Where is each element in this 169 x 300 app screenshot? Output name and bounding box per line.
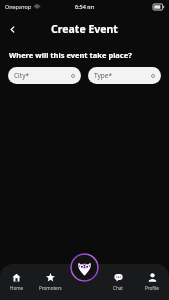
staticText: Home bbox=[10, 285, 24, 291]
button[interactable]: Chat bbox=[101, 264, 135, 300]
staticText: Type* bbox=[94, 71, 113, 80]
button[interactable]: Home bbox=[0, 264, 33, 300]
button[interactable]: Back bbox=[4, 21, 20, 37]
staticText: Promoters bbox=[39, 285, 62, 291]
button[interactable]: Create bbox=[70, 253, 99, 282]
staticText: Create Event bbox=[51, 22, 118, 36]
button[interactable]: City* bbox=[8, 67, 81, 84]
button[interactable]: Profile bbox=[135, 264, 169, 300]
button[interactable]: Promoters bbox=[33, 264, 67, 300]
staticText: City* bbox=[14, 71, 30, 80]
staticText: Оператор bbox=[5, 3, 32, 10]
button[interactable]: Type* bbox=[88, 67, 161, 84]
staticText: Where will this event take place? bbox=[9, 50, 132, 60]
staticText: Chat bbox=[113, 285, 123, 291]
staticText: 6:54 пп bbox=[75, 3, 95, 10]
staticText: Profile bbox=[145, 285, 159, 291]
